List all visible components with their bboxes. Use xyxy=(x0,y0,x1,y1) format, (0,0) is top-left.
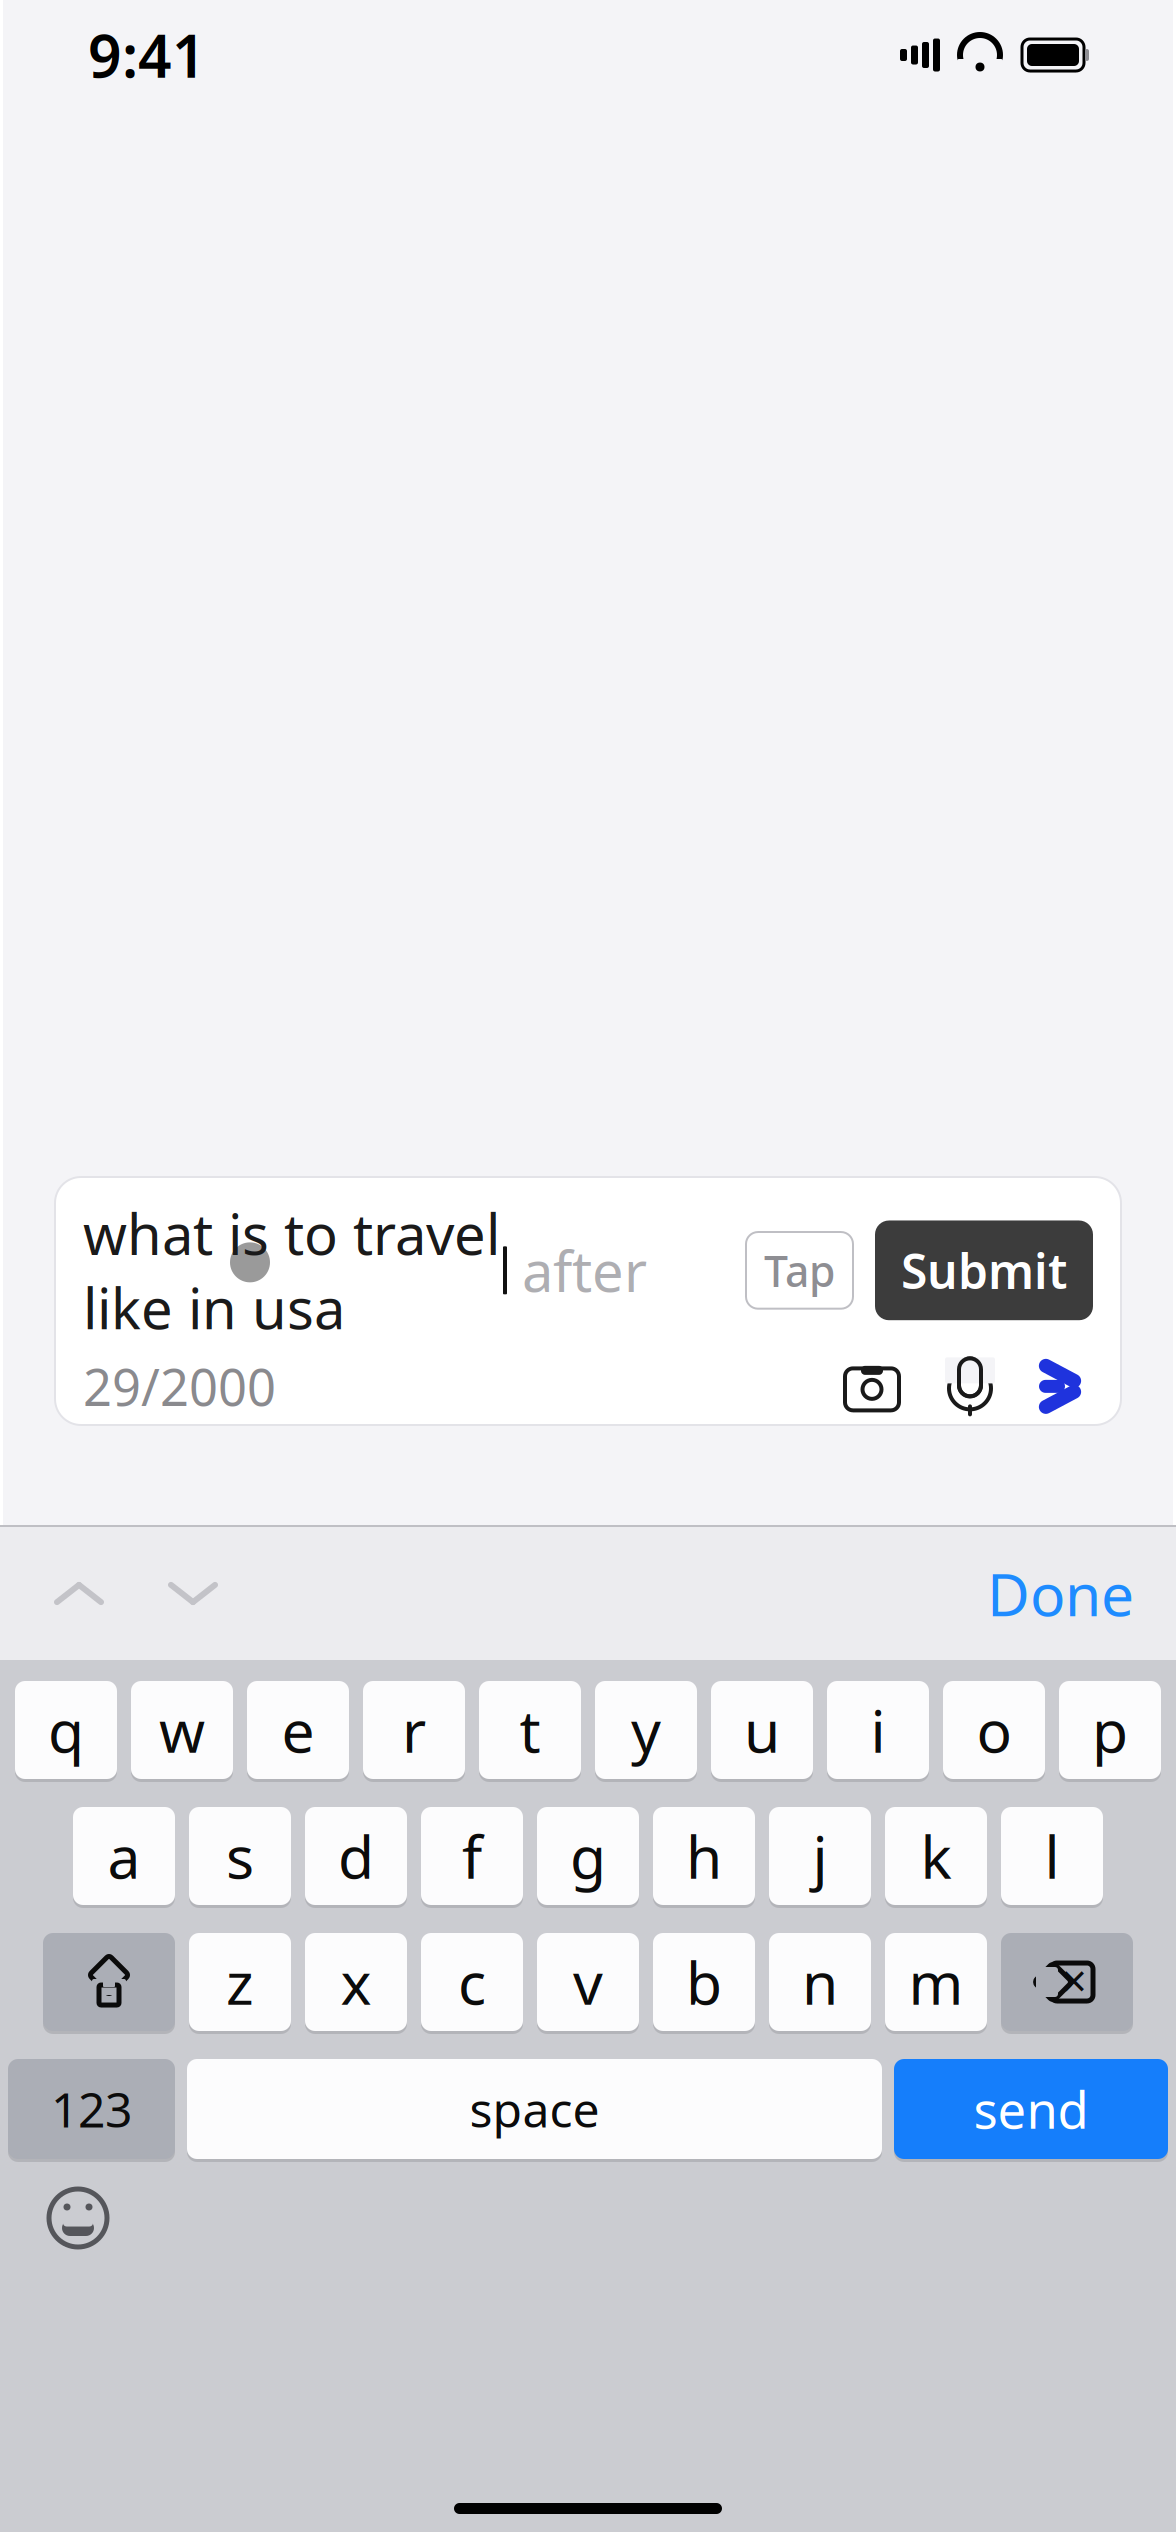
staticText: k xyxy=(920,1817,951,1895)
staticText: w xyxy=(159,1691,205,1769)
staticText: n xyxy=(802,1943,838,2021)
button[interactable]: m xyxy=(885,1930,987,2034)
button[interactable]: g xyxy=(537,1804,639,1908)
staticText: Submit xyxy=(901,1238,1067,1302)
staticText: g xyxy=(570,1817,606,1895)
button[interactable]: Send xyxy=(1035,1357,1093,1415)
staticText: Tap xyxy=(764,1242,835,1299)
button[interactable]: p xyxy=(1059,1678,1161,1782)
button[interactable]: u xyxy=(711,1678,813,1782)
button[interactable]: r xyxy=(363,1678,465,1782)
button[interactable]: t xyxy=(479,1678,581,1782)
staticText: p xyxy=(1092,1691,1128,1769)
staticText: l xyxy=(1044,1817,1059,1895)
staticText: what is to travel like in usa xyxy=(83,1196,500,1345)
staticText: o xyxy=(976,1691,1011,1769)
button[interactable]: o xyxy=(943,1678,1045,1782)
button[interactable]: y xyxy=(595,1678,697,1782)
staticText: m xyxy=(908,1943,963,2021)
button[interactable]: h xyxy=(653,1804,755,1908)
staticText: space xyxy=(469,2077,599,2141)
staticText: i xyxy=(870,1691,885,1769)
button[interactable]: Shift xyxy=(43,1930,175,2034)
button[interactable]: Next field xyxy=(164,1576,222,1610)
button[interactable]: Camera xyxy=(843,1357,901,1415)
staticText: 29/2000 xyxy=(83,1353,276,1420)
staticText: send xyxy=(973,2075,1088,2143)
staticText: x xyxy=(340,1943,371,2021)
button[interactable]: send xyxy=(894,2056,1168,2162)
button[interactable]: d xyxy=(305,1804,407,1908)
staticText: Done xyxy=(987,1554,1134,1632)
staticText: a xyxy=(107,1817,140,1895)
staticText: c xyxy=(458,1943,486,2021)
staticText: t xyxy=(519,1691,540,1769)
button[interactable]: v xyxy=(537,1930,639,2034)
button[interactable]: Dictate xyxy=(941,1355,999,1417)
button[interactable]: q xyxy=(15,1678,117,1782)
button[interactable]: x xyxy=(305,1930,407,2034)
button[interactable]: Emoji keyboard xyxy=(46,2186,110,2250)
staticText: b xyxy=(686,1943,722,2021)
button[interactable]: n xyxy=(769,1930,871,2034)
button[interactable]: j xyxy=(769,1804,871,1908)
staticText: v xyxy=(573,1943,603,2021)
button[interactable]: l xyxy=(1001,1804,1103,1908)
button[interactable]: w xyxy=(131,1678,233,1782)
staticText: e xyxy=(281,1691,314,1769)
staticText: after xyxy=(507,1233,647,1308)
staticText: h xyxy=(686,1817,722,1895)
staticText: u xyxy=(744,1691,780,1769)
button[interactable]: c xyxy=(421,1930,523,2034)
button[interactable]: e xyxy=(247,1678,349,1782)
button[interactable]: Submit xyxy=(875,1220,1093,1320)
button[interactable]: i xyxy=(827,1678,929,1782)
staticText: j xyxy=(812,1817,827,1895)
staticText: d xyxy=(338,1817,374,1895)
staticText: 123 xyxy=(51,2077,132,2141)
staticText: 9:41 xyxy=(88,16,206,94)
button[interactable]: a xyxy=(73,1804,175,1908)
button[interactable]: Done xyxy=(987,1554,1134,1632)
button[interactable]: Tap xyxy=(746,1232,853,1309)
staticText: z xyxy=(226,1943,254,2021)
button[interactable]: 123 xyxy=(8,2056,175,2162)
button[interactable]: b xyxy=(653,1930,755,2034)
staticText: r xyxy=(402,1691,426,1769)
button[interactable]: Delete xyxy=(1001,1930,1133,2034)
button[interactable]: f xyxy=(421,1804,523,1908)
staticText: q xyxy=(48,1691,84,1769)
staticText: y xyxy=(631,1691,661,1769)
button[interactable]: z xyxy=(189,1930,291,2034)
button[interactable]: Previous field xyxy=(50,1576,108,1610)
button[interactable]: space xyxy=(187,2056,882,2162)
staticText: s xyxy=(226,1817,254,1895)
staticText: f xyxy=(462,1817,482,1895)
staticText: × xyxy=(1061,1950,1087,2010)
button[interactable]: s xyxy=(189,1804,291,1908)
button[interactable]: k xyxy=(885,1804,987,1908)
